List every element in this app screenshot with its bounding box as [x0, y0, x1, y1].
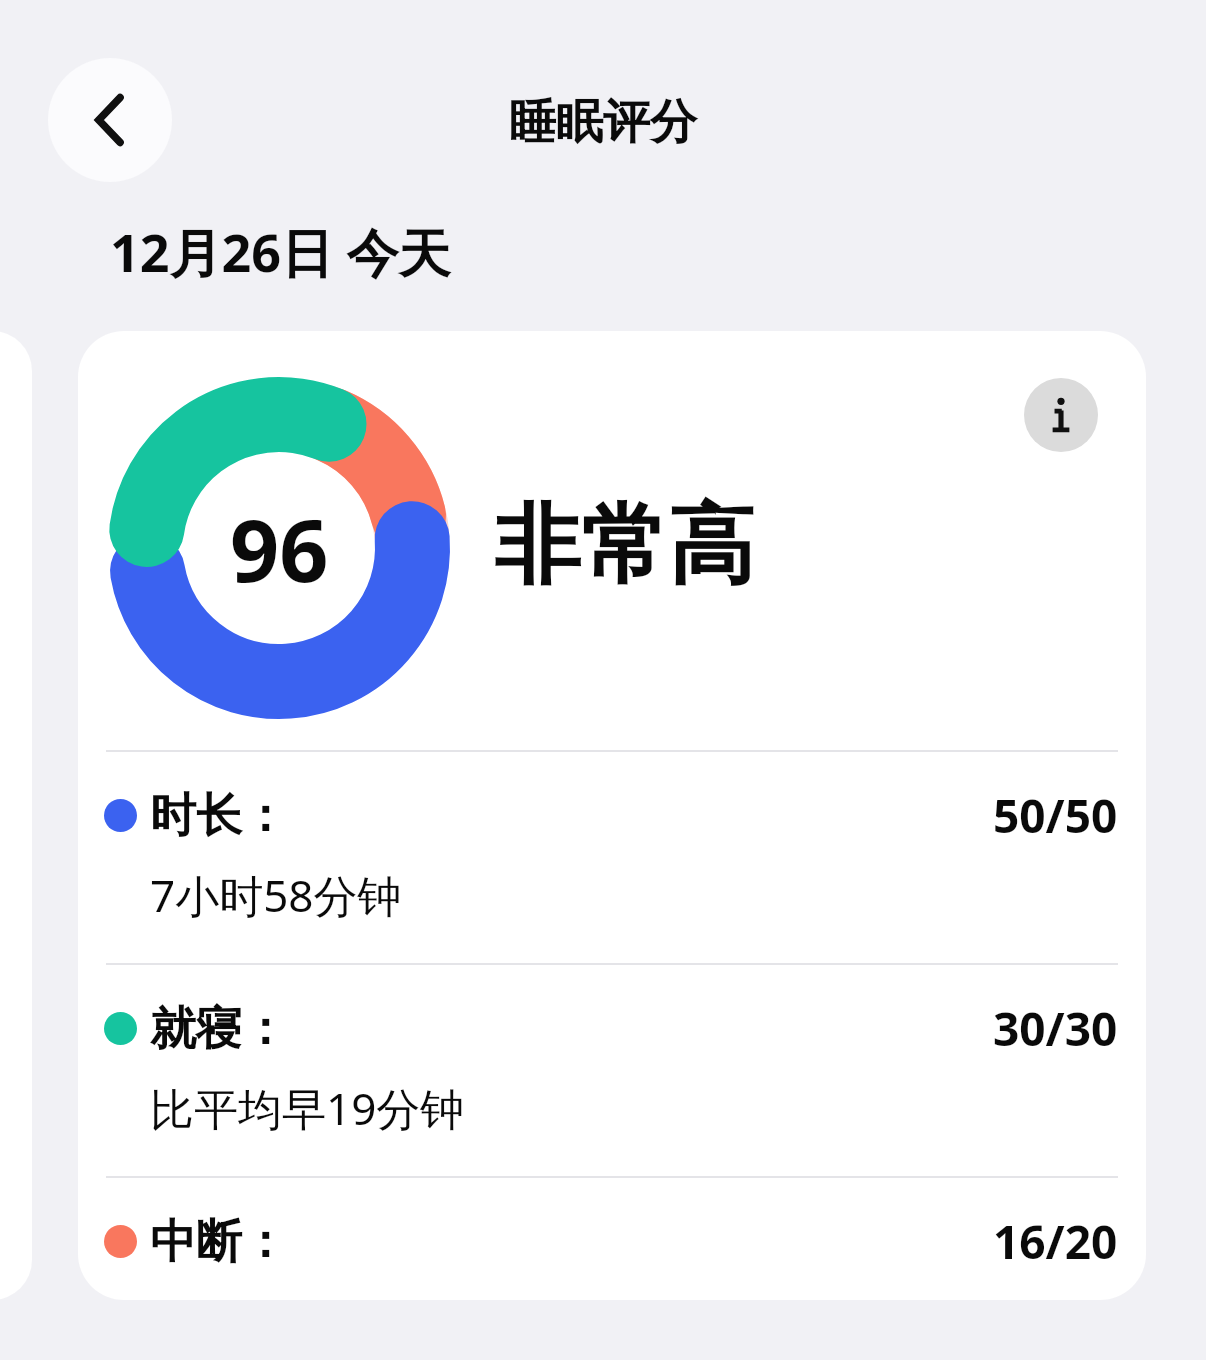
button[interactable]: 中断： [78, 1176, 1146, 1300]
button[interactable]: 时长： [78, 750, 1146, 963]
staticText: 时长： [150, 787, 288, 845]
staticText: 中断： [150, 1213, 288, 1271]
button[interactable]: 就寝： [78, 963, 1146, 1176]
button[interactable]: Back [48, 58, 172, 182]
staticText: 就寝： [150, 1000, 288, 1058]
staticText: 比平均早19分钟 [150, 1078, 465, 1138]
staticText: 50/50 [993, 784, 1118, 847]
staticText: 96 [230, 490, 329, 607]
staticText: 16/20 [993, 1210, 1118, 1273]
staticText: 7小时58分钟 [150, 865, 402, 925]
staticText: 30/30 [993, 997, 1118, 1060]
staticText: 12月26日 今天 [110, 216, 451, 287]
button[interactable]: Info [1024, 378, 1098, 452]
staticText: 睡眠评分 [0, 93, 1206, 152]
staticText: 非常高 [494, 491, 755, 601]
